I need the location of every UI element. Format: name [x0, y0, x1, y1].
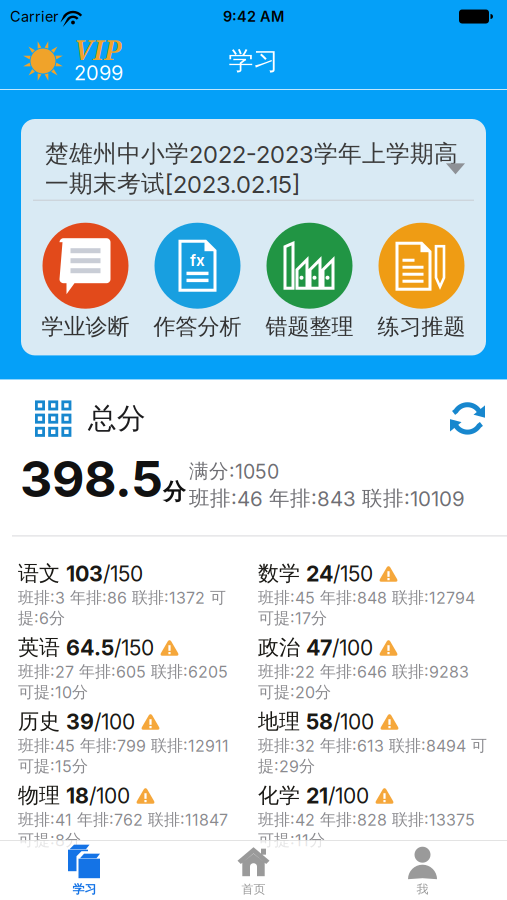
button[interactable]: 刷新 [450, 401, 507, 436]
button[interactable]: fx [141, 223, 253, 340]
staticText: 班排:32 年排:613 联排:8494 可 [258, 736, 487, 756]
staticText: 总分 [88, 400, 146, 436]
staticText: 班排:3 年排:86 联排:1372 可 [18, 588, 226, 608]
staticText: 作答分析 [153, 313, 241, 340]
button[interactable]: 首页 [169, 841, 338, 900]
staticText: 班排:46 年排:843 联排:10109 [189, 486, 465, 511]
staticText: 地理 58/100 [258, 708, 374, 734]
button[interactable]: 错题整理 [253, 223, 365, 340]
staticText: 可提:10分 [18, 682, 88, 702]
staticText: 班排:27 年排:605 联排:6205 [18, 662, 228, 682]
staticText: 学业诊断 [41, 313, 129, 340]
button[interactable]: 练习推题 [365, 223, 477, 340]
staticText: 我 [416, 882, 428, 897]
staticText: 可提:17分 [258, 608, 327, 628]
staticText: 错题整理 [265, 313, 353, 340]
staticText: 班排:41 年排:762 联排:11847 [18, 810, 228, 830]
staticText: 学习 [228, 45, 278, 77]
staticText: 练习推题 [377, 313, 465, 340]
staticText: 提:6分 [18, 608, 65, 628]
staticText: 化学 21/100 [258, 782, 369, 808]
staticText: 班排:42 年排:828 联排:13375 [258, 810, 475, 830]
button[interactable]: 学习 [0, 841, 169, 900]
staticText: 数学 24/150 [258, 560, 373, 586]
button[interactable]: 我 [338, 841, 507, 900]
staticText: 2099 [74, 61, 123, 85]
staticText: 历史 39/100 [18, 708, 135, 734]
staticText: 9:42 AM [223, 8, 284, 25]
staticText: VIP [74, 32, 122, 68]
staticText: 班排:45 年排:848 联排:12794 [258, 588, 475, 608]
staticText: 可提:8分 [18, 830, 81, 850]
staticText: 班排:45 年排:799 联排:12911 [18, 736, 229, 756]
staticText: 学习 [72, 882, 96, 897]
staticText: 可提:11分 [258, 830, 325, 850]
staticText: 满分:1050 [189, 459, 279, 484]
staticText: 提:29分 [258, 756, 315, 776]
staticText: fx [190, 252, 205, 270]
staticText: 首页 [241, 882, 265, 897]
staticText: 英语 64.5/150 [18, 634, 154, 660]
button[interactable]: 楚雄州中小学2022-2023学年上学期高一期末考试[2023.02.15] [21, 119, 486, 199]
staticText: Carrier [10, 8, 58, 25]
staticText: 政治 47/100 [258, 634, 373, 660]
button[interactable]: 学业诊断 [29, 223, 141, 340]
staticText: 班排:22 年排:646 联排:9283 [258, 662, 469, 682]
staticText: 可提:20分 [258, 682, 331, 702]
staticText: 398.5分 [20, 449, 186, 508]
staticText: 可提:15分 [18, 756, 88, 776]
staticText: 物理 18/100 [18, 782, 130, 808]
staticText: 语文 103/150 [18, 560, 143, 586]
staticText: 楚雄州中小学2022-2023学年上学期高一期末考试[2023.02.15] [45, 139, 458, 199]
